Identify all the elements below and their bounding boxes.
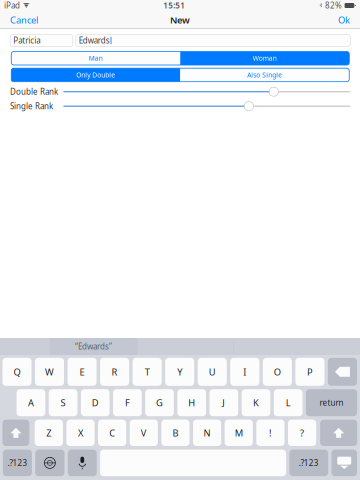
staticText: .?123: [7, 458, 27, 468]
button[interactable]: I: [230, 358, 259, 386]
button[interactable]: N: [193, 420, 221, 446]
button[interactable]: F: [113, 389, 142, 416]
button[interactable]: M: [225, 420, 253, 446]
staticText: B: [172, 427, 178, 439]
button[interactable]: Numbers: [289, 450, 328, 476]
button[interactable]: T: [133, 358, 162, 386]
button[interactable]: V: [130, 420, 158, 446]
staticText: C: [109, 427, 115, 439]
staticText: H: [188, 396, 195, 409]
staticText: L: [286, 396, 291, 409]
staticText: ?: [300, 427, 304, 439]
button[interactable]: Woman: [180, 51, 349, 65]
button[interactable]: K: [242, 389, 270, 416]
staticText: Y: [177, 366, 182, 378]
staticText: Ok: [338, 14, 350, 26]
button[interactable]: Man: [11, 51, 180, 65]
staticText: P: [307, 366, 313, 378]
staticText: K: [253, 396, 259, 409]
staticText: “Edwards”: [75, 341, 112, 352]
staticText: Only Double: [76, 70, 115, 79]
staticText: E: [79, 366, 84, 378]
staticText: Edwards: [79, 35, 110, 46]
button[interactable]: Hide keyboard: [331, 450, 357, 476]
staticText: 82%: [325, 0, 342, 11]
staticText: G: [156, 396, 163, 409]
button[interactable]: ?: [288, 420, 316, 446]
button[interactable]: Patricia: [10, 34, 73, 47]
staticText: Man: [89, 54, 103, 63]
staticText: S: [61, 396, 66, 409]
button[interactable]: R: [100, 358, 129, 386]
staticText: N: [204, 427, 211, 439]
button[interactable]: “Edwards”: [50, 338, 137, 355]
staticText: U: [209, 366, 216, 378]
button[interactable]: H: [177, 389, 206, 416]
button[interactable]: Cancel: [0, 11, 48, 29]
button[interactable]: Numbers: [3, 450, 32, 476]
button[interactable]: D: [81, 389, 110, 416]
button[interactable]: X: [66, 420, 95, 446]
button[interactable]: Next keyboard: [35, 450, 64, 476]
button[interactable]: Edwards: [76, 34, 350, 47]
button[interactable]: Dictation: [68, 450, 97, 476]
staticText: V: [141, 427, 147, 439]
button[interactable]: Ok: [328, 11, 360, 29]
button[interactable]: Y: [165, 358, 194, 386]
staticText: A: [28, 396, 34, 409]
staticText: W: [45, 366, 54, 378]
staticText: New: [170, 14, 190, 26]
button[interactable]: Only Double: [11, 68, 180, 82]
button[interactable]: return: [306, 389, 357, 416]
button[interactable]: W: [35, 358, 64, 386]
staticText: Also Single: [247, 70, 282, 79]
button[interactable]: !: [256, 420, 284, 446]
button[interactable]: B: [161, 420, 189, 446]
staticText: Cancel: [10, 14, 38, 26]
staticText: M: [235, 427, 243, 439]
staticText: Patricia: [13, 35, 40, 46]
button[interactable]: E: [67, 358, 97, 386]
button[interactable]: G: [145, 389, 174, 416]
staticText: O: [274, 366, 281, 378]
button[interactable]: Z: [35, 420, 63, 446]
staticText: .?123: [299, 458, 319, 468]
button[interactable]: C: [98, 420, 126, 446]
staticText: R: [112, 366, 118, 378]
button[interactable]: U: [198, 358, 227, 386]
button[interactable]: Shift: [320, 420, 357, 446]
button[interactable]: S: [49, 389, 77, 416]
button[interactable]: Q: [2, 358, 31, 386]
button[interactable]: P: [295, 358, 324, 386]
staticText: I: [243, 366, 246, 378]
staticText: Single Rank: [10, 101, 53, 111]
staticText: Q: [13, 366, 20, 378]
staticText: iPad: [4, 0, 20, 11]
button[interactable]: O: [263, 358, 292, 386]
staticText: Double Rank: [10, 86, 58, 97]
button[interactable]: Delete: [328, 358, 357, 386]
button[interactable]: Also Single: [180, 68, 349, 82]
staticText: F: [125, 396, 130, 409]
staticText: D: [92, 396, 99, 409]
staticText: T: [145, 366, 150, 378]
button[interactable]: Shift: [2, 420, 29, 446]
staticText: J: [222, 396, 225, 409]
button[interactable]: J: [209, 389, 238, 416]
staticText: !: [269, 427, 272, 439]
staticText: Woman: [253, 54, 277, 63]
staticText: return: [320, 397, 344, 408]
button[interactable]: A: [17, 389, 45, 416]
staticText: Z: [46, 427, 51, 439]
staticText: X: [78, 427, 83, 439]
button[interactable]: L: [274, 389, 302, 416]
staticText: 15:51: [163, 0, 185, 11]
